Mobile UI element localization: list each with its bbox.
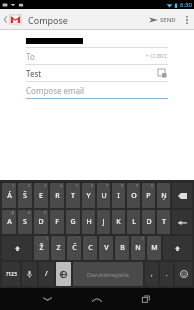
staticText: Davvisámegiella (87, 271, 129, 278)
staticText: Č (72, 243, 77, 253)
staticText: S (23, 217, 27, 227)
staticText: To (26, 51, 35, 62)
staticText: Test (26, 68, 42, 79)
staticText: N (135, 243, 141, 253)
button[interactable]: Emoji (175, 262, 192, 286)
button[interactable]: E (34, 183, 48, 208)
button[interactable]: O (127, 183, 140, 208)
staticText: F (55, 217, 59, 227)
button[interactable]: U (97, 183, 110, 208)
staticText: Z (56, 243, 61, 253)
staticText: 3 (44, 183, 47, 188)
button[interactable]: Á (2, 183, 16, 208)
staticText: T (162, 217, 166, 227)
staticText: " (78, 236, 80, 241)
button[interactable]: Home (72, 288, 121, 310)
staticText: ? (142, 236, 144, 241)
button[interactable]: Z (51, 236, 65, 260)
button[interactable]: . (160, 262, 173, 286)
button[interactable]: P (142, 183, 155, 208)
button[interactable]: R (50, 183, 64, 208)
staticText: C (88, 243, 93, 253)
staticText: Ņ (161, 191, 167, 201)
button[interactable]: V (99, 236, 113, 260)
staticText: / (45, 269, 48, 279)
button[interactable]: Navigate up (0, 9, 25, 30)
button[interactable]: Š (18, 183, 32, 208)
staticText: @ (11, 210, 15, 215)
button[interactable]: T (157, 210, 170, 234)
staticText: 9 (136, 183, 139, 188)
button[interactable]: S (18, 210, 32, 234)
staticText: V (104, 243, 109, 253)
staticText: T (71, 191, 75, 201)
staticText: E (39, 191, 43, 201)
staticText: . (166, 270, 168, 278)
staticText: Compose email (26, 85, 85, 96)
staticText: M (151, 243, 158, 253)
button[interactable]: back (172, 183, 192, 208)
button[interactable]: K (112, 210, 125, 234)
staticText: # (28, 210, 31, 215)
staticText: L (132, 217, 136, 227)
staticText: 5 (76, 183, 79, 188)
staticText: U (101, 191, 107, 201)
button[interactable]: ?123 (2, 262, 20, 286)
staticText: + CC/BCC (146, 53, 168, 60)
staticText: , (151, 270, 153, 278)
button[interactable]: shift (2, 236, 32, 260)
button[interactable]: D (34, 210, 48, 234)
button[interactable]: Back (23, 288, 72, 310)
button[interactable]: C (83, 236, 97, 260)
button[interactable]: N (131, 236, 145, 260)
button[interactable]: F (50, 210, 64, 234)
button[interactable]: M (147, 236, 161, 260)
staticText: O (131, 191, 137, 201)
button[interactable]: I (112, 183, 125, 208)
button[interactable]: Compose email (26, 82, 168, 98)
button[interactable]: More options (180, 9, 194, 30)
staticText: Š (23, 191, 27, 201)
button[interactable]: Y (82, 183, 95, 208)
staticText: SEND (160, 16, 176, 24)
button[interactable]: SEND (145, 9, 180, 30)
button[interactable]: / (39, 262, 54, 286)
button[interactable]: Voice input (22, 262, 37, 286)
staticText: R (55, 191, 60, 201)
staticText: D (146, 217, 152, 227)
staticText: Á (7, 191, 12, 201)
staticText: A (7, 217, 12, 227)
staticText: P (146, 191, 151, 201)
button[interactable]: G (66, 210, 80, 234)
staticText: 7 (106, 183, 109, 188)
button[interactable]: enter (172, 210, 192, 234)
staticText: 4 (60, 183, 63, 188)
staticText: 6:30 (180, 1, 192, 9)
staticText: K (116, 217, 121, 227)
button[interactable]: T (66, 183, 80, 208)
button[interactable]: A (2, 210, 16, 234)
staticText: Ž (39, 243, 44, 253)
button[interactable]: Ž (34, 236, 49, 260)
button[interactable]: J (97, 210, 110, 234)
button[interactable]: To (26, 48, 168, 64)
button[interactable]: , (145, 262, 158, 286)
button[interactable]: Ņ (157, 183, 170, 208)
button[interactable]: Davvisámegiella (73, 262, 143, 286)
staticText: H (86, 217, 92, 227)
staticText: J (102, 217, 105, 227)
staticText: Compose (28, 14, 68, 26)
button[interactable]: Č (67, 236, 81, 260)
button[interactable]: L (127, 210, 140, 234)
staticText: G (70, 217, 76, 227)
button[interactable]: B (115, 236, 129, 260)
button[interactable]: Attach (157, 68, 168, 79)
staticText: $ (44, 210, 47, 215)
button[interactable]: H (82, 210, 95, 234)
staticText: D (38, 217, 44, 227)
button[interactable]: Change language (56, 262, 71, 286)
button[interactable]: shift (163, 236, 192, 260)
button[interactable]: D (142, 210, 155, 234)
staticText: 8 (121, 183, 124, 188)
button[interactable]: Recent apps (121, 288, 170, 310)
